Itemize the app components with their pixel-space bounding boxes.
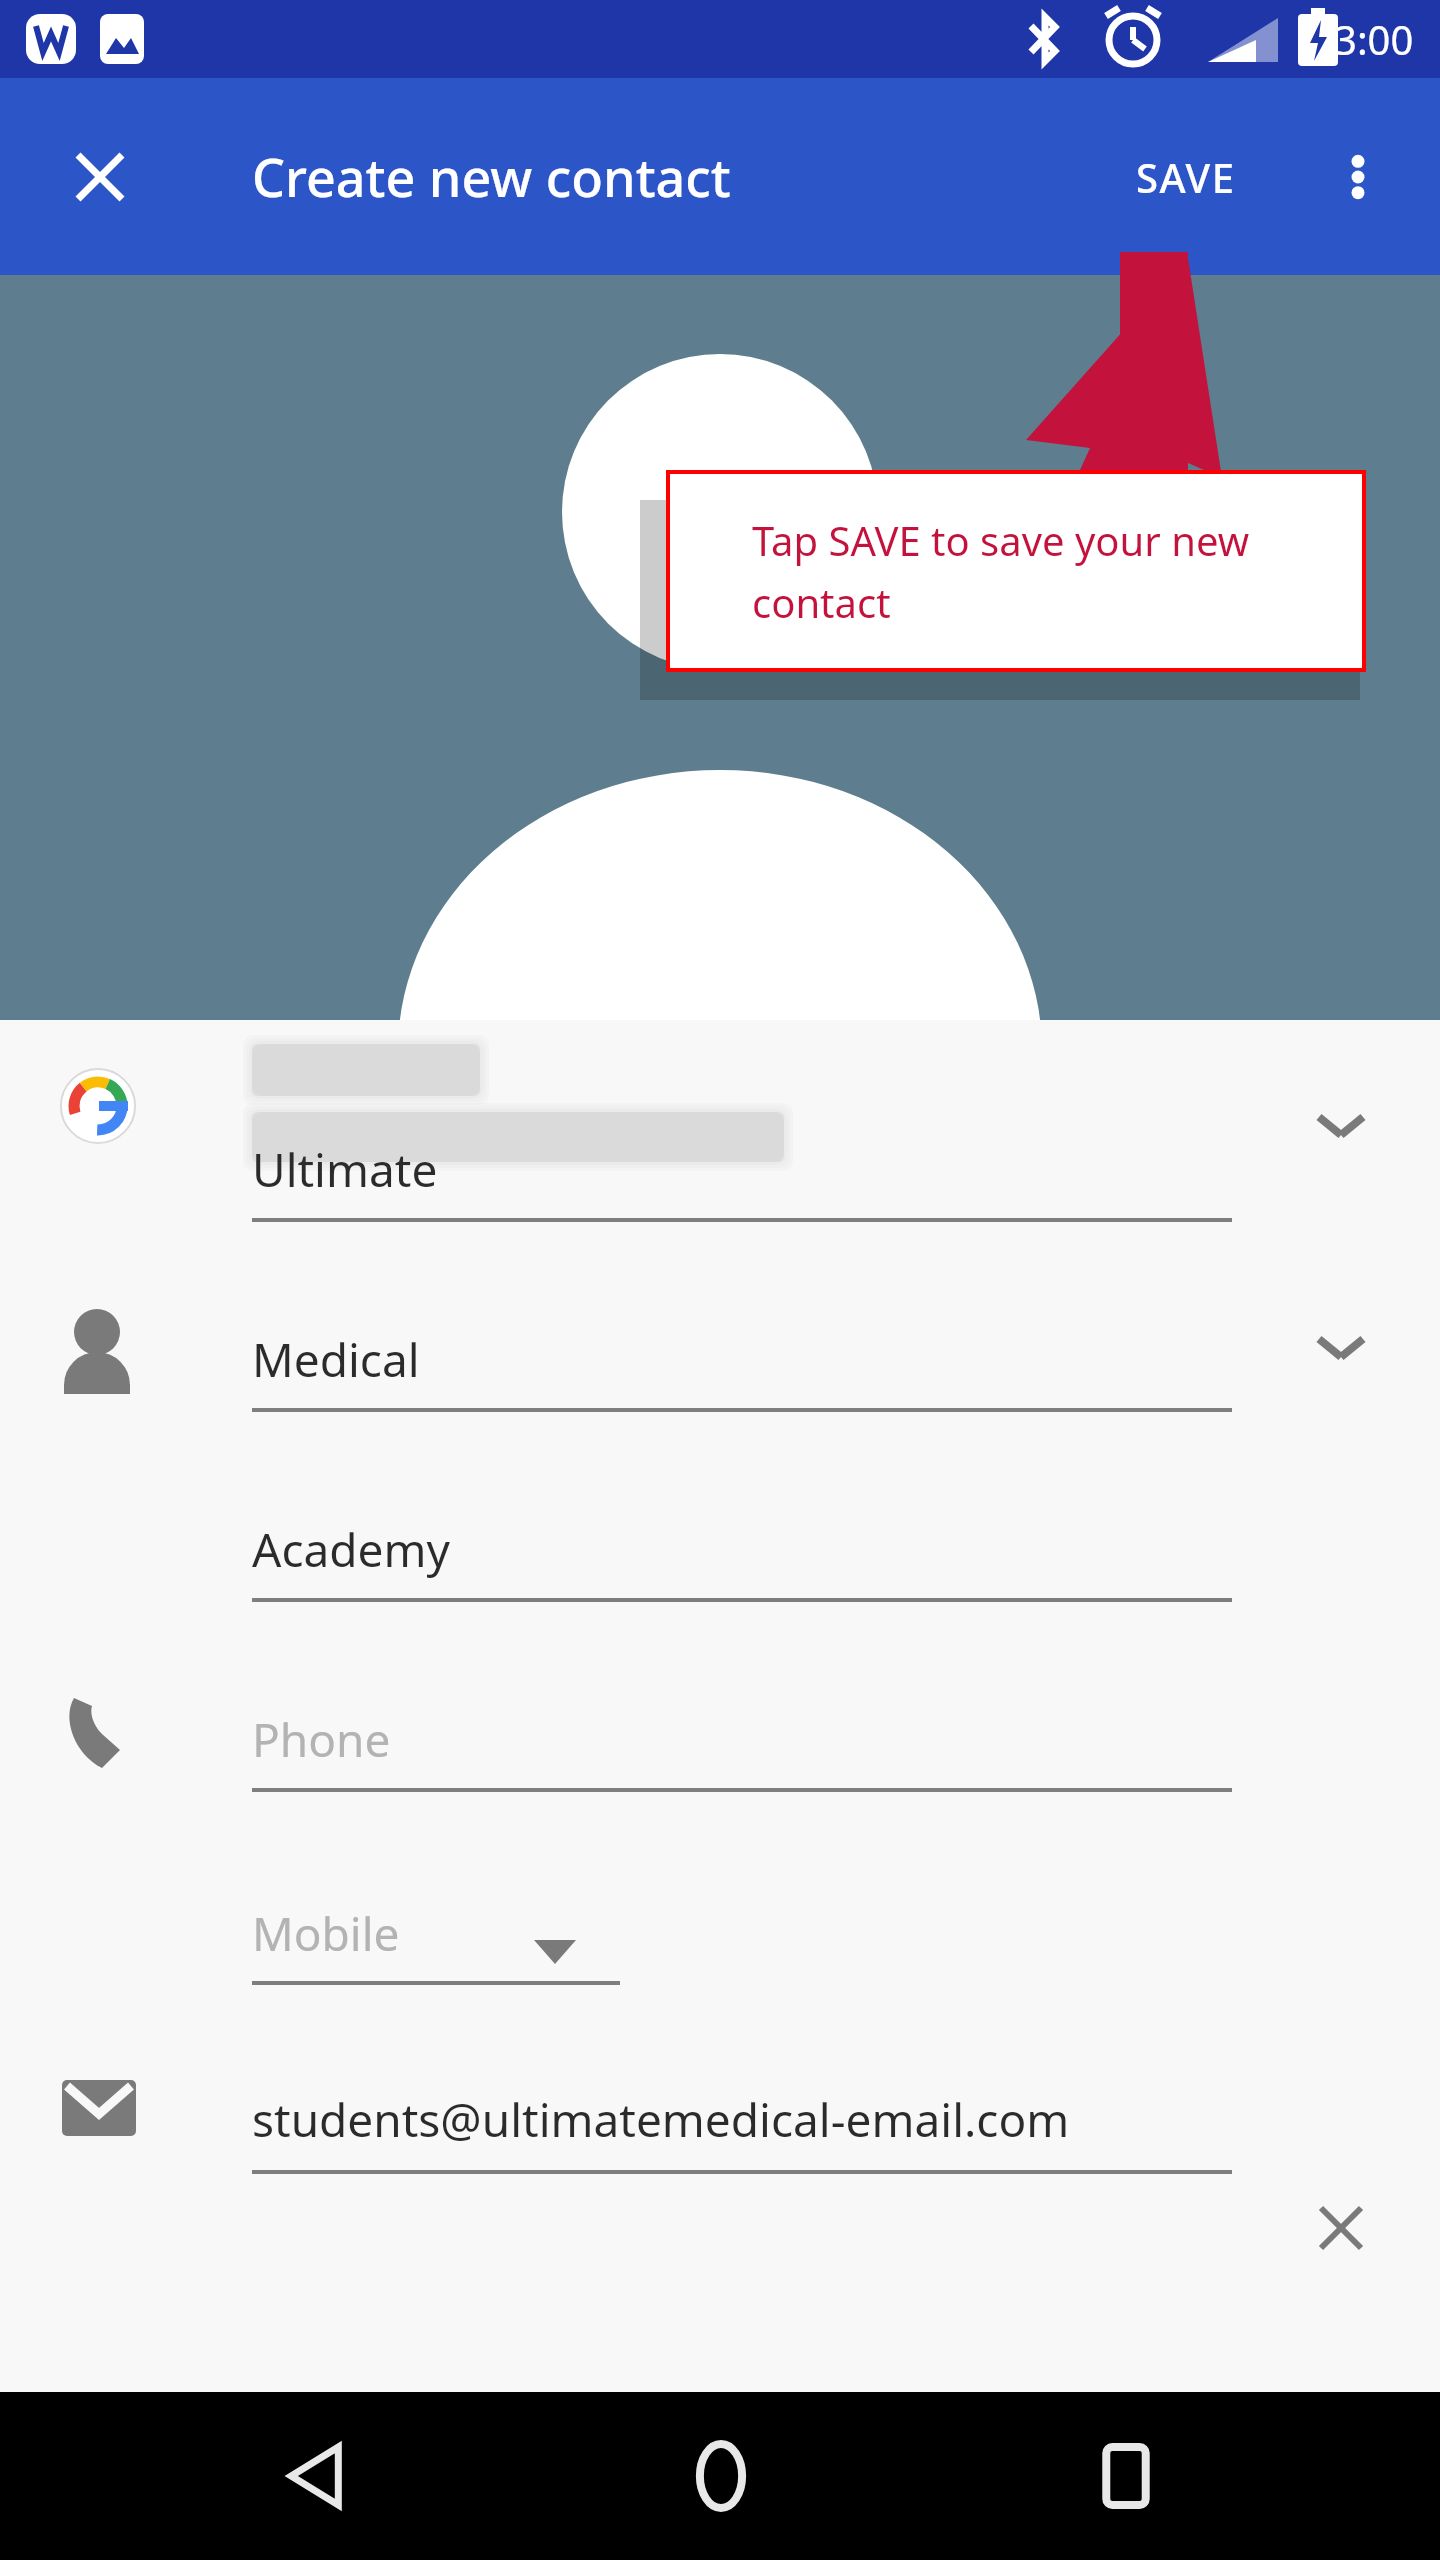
- button[interactable]: Recent apps: [1056, 2406, 1196, 2546]
- staticText: Medical: [252, 1328, 420, 1391]
- staticText: SAVE: [1136, 150, 1236, 204]
- button[interactable]: Close: [54, 131, 146, 223]
- staticText: Academy: [252, 1518, 450, 1581]
- button[interactable]: Mobile: [0, 1780, 1440, 1970]
- staticText: students@ultimatemedical-email.com: [252, 2088, 1070, 2151]
- button[interactable]: Phone: [0, 1590, 1440, 1780]
- button[interactable]: Back: [246, 2406, 386, 2546]
- staticText: Mobile: [252, 1902, 400, 1965]
- button[interactable]: Home: [651, 2406, 791, 2546]
- button[interactable]: More options: [1312, 131, 1404, 223]
- button[interactable]: students@ultimatemedical-email.com: [0, 1970, 1440, 2160]
- button[interactable]: Medical: [0, 1210, 1440, 1400]
- button[interactable]: SAVE: [1118, 132, 1254, 222]
- button[interactable]: Ultimate: [0, 1020, 1440, 1210]
- button[interactable]: Academy: [0, 1400, 1440, 1590]
- staticText: 3:00: [1334, 12, 1414, 66]
- button[interactable]: Tap SAVE to save your new contact: [666, 470, 1366, 672]
- staticText: Tap SAVE to save your new contact: [752, 513, 1280, 629]
- staticText: Phone: [252, 1708, 391, 1771]
- staticText: Create new contact: [252, 141, 731, 212]
- staticText: Ultimate: [252, 1138, 438, 1201]
